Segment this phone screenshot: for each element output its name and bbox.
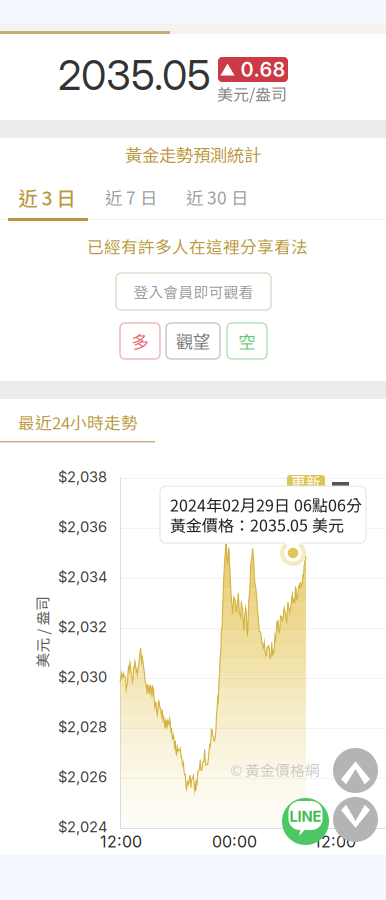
button[interactable]: 空	[227, 323, 267, 359]
staticText: $2,032	[58, 618, 107, 636]
staticText: 觀望	[176, 328, 210, 354]
staticText: 多	[131, 328, 148, 354]
button[interactable]: 更新	[287, 475, 325, 488]
staticText: 黃金走勢預測統計	[125, 142, 261, 167]
staticText: 近 3 日	[18, 183, 75, 211]
button[interactable]: 近 7 日	[88, 177, 174, 217]
staticText: © 黃金價格網	[230, 759, 320, 780]
button[interactable]: Scroll to bottom	[333, 797, 378, 842]
button[interactable]: 近 30 日	[172, 177, 262, 217]
staticText: 最近24小時走勢	[18, 410, 138, 434]
staticText: 12:00	[314, 832, 356, 851]
staticText: 登入會員即可觀看	[133, 281, 253, 302]
staticText: LINE	[289, 808, 321, 825]
staticText: $2,026	[58, 768, 107, 786]
staticText: 2035.05	[58, 50, 211, 100]
button[interactable]: Share on LINE	[282, 798, 329, 845]
staticText: 00:00	[212, 832, 257, 851]
staticText: 更新	[291, 471, 321, 492]
staticText: 美元/盎司	[217, 82, 287, 105]
staticText: 2024年02月29日 06點06分	[170, 493, 362, 516]
staticText: $2,030	[58, 668, 107, 686]
staticText: 美元 / 盎司	[6, 621, 78, 642]
button[interactable]: 多	[120, 323, 160, 359]
staticText: 近 30 日	[186, 184, 248, 210]
staticText: 黃金價格：2035.05 美元	[170, 513, 344, 536]
staticText: 空	[238, 328, 255, 354]
staticText: 0.68	[240, 57, 285, 82]
button[interactable]: 登入會員即可觀看	[116, 273, 271, 310]
button[interactable]: 觀望	[166, 323, 220, 359]
staticText: 12:00	[100, 832, 142, 851]
staticText: 已經有許多人在這裡分享看法	[87, 234, 308, 258]
staticText: $2,038	[58, 468, 107, 486]
staticText: $2,028	[58, 718, 107, 736]
staticText: 近 7 日	[105, 184, 157, 210]
staticText: $2,024	[58, 818, 107, 836]
button[interactable]: Scroll to top	[333, 748, 378, 793]
button[interactable]: 近 3 日	[4, 177, 90, 217]
staticText: $2,036	[58, 518, 107, 536]
staticText: $2,034	[58, 568, 107, 586]
